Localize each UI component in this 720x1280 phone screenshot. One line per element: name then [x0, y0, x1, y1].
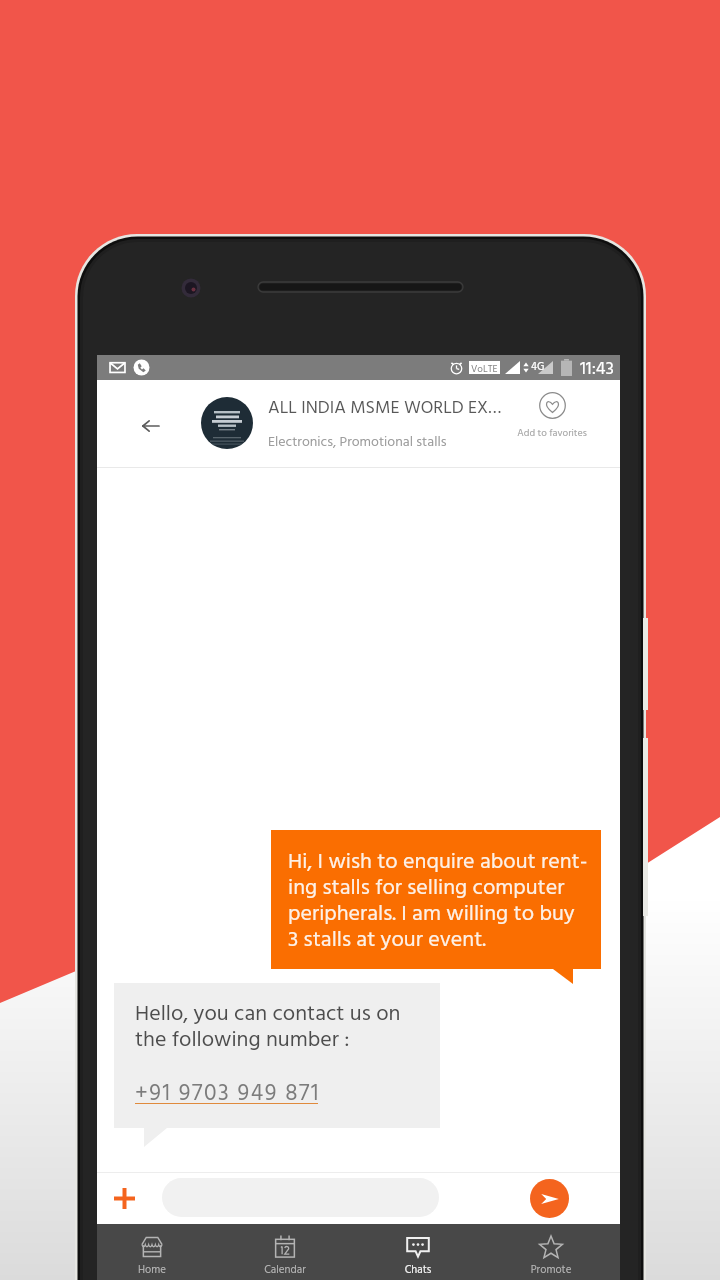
button[interactable]: Add to favorites [505, 392, 599, 442]
staticText: Promote [506, 1261, 596, 1279]
staticText: Hello, you can contact us on the followi… [135, 1003, 401, 1055]
button[interactable]: Profile picture [201, 397, 253, 449]
staticText: 11:43 [580, 355, 614, 380]
button[interactable]: Chats [373, 1224, 463, 1280]
staticText: ALL INDIA MSME WORLD EX… [268, 394, 502, 423]
button[interactable]: Calendar [240, 1224, 330, 1280]
staticText: Hi, I wish to enquire about rent- ing st… [288, 851, 588, 955]
staticText: 4G [531, 358, 545, 375]
button[interactable]: Hello, you can contact us on the followi… [114, 983, 440, 1128]
button[interactable]: Hi, I wish to enquire about rent- ing st… [271, 830, 601, 969]
staticText: Add to favorites [505, 425, 599, 441]
button[interactable]: Home [107, 1224, 197, 1280]
button[interactable]: Back [128, 404, 172, 448]
staticText: VoLTE [471, 361, 498, 374]
button[interactable]: Send [530, 1179, 569, 1218]
staticText: Chats [373, 1261, 463, 1279]
button[interactable]: +91 9703 949 871 [135, 1076, 321, 1113]
staticText: Calendar [240, 1261, 330, 1279]
button[interactable]: Add attachment [105, 1179, 143, 1217]
staticText: Electronics, Promotional stalls [268, 431, 447, 453]
button[interactable]: Promote [506, 1224, 596, 1280]
staticText: Home [107, 1261, 197, 1279]
